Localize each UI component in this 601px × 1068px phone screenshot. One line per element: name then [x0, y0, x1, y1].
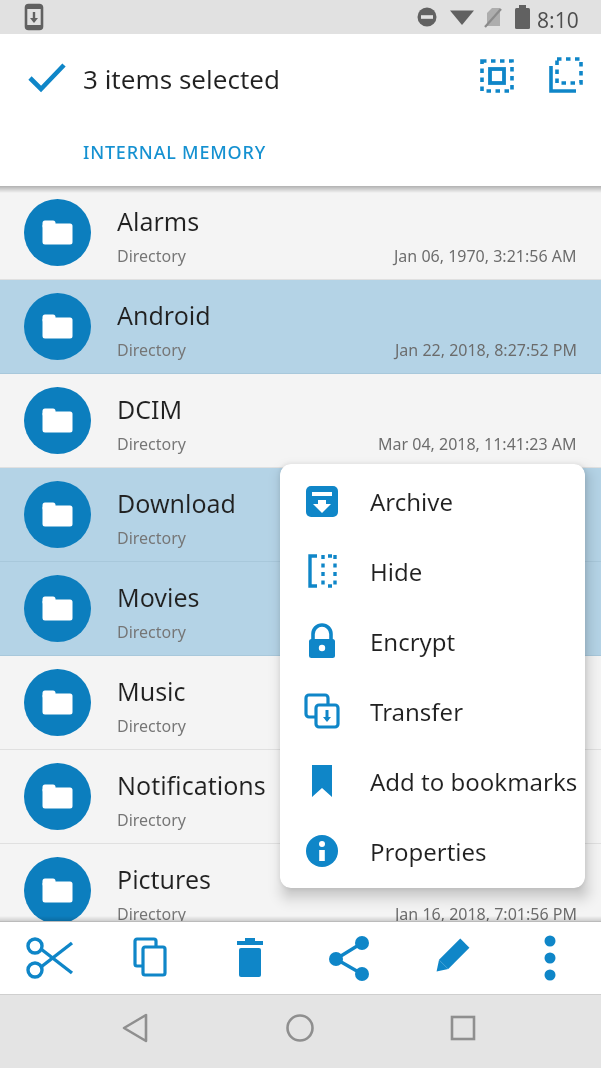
staticText: Directory [117, 809, 187, 831]
button[interactable]: Music [0, 656, 601, 750]
button[interactable] [433, 1001, 493, 1061]
staticText: Directory [117, 621, 187, 643]
staticText: 3 items selected [83, 61, 280, 96]
staticText: Add to bookmarks [370, 765, 578, 798]
staticText: INTERNAL MEMORY [83, 140, 266, 165]
button[interactable] [106, 1001, 166, 1061]
button[interactable] [114, 922, 186, 994]
staticText: Archive [370, 485, 454, 518]
button[interactable]: Android [0, 280, 601, 374]
button[interactable] [314, 922, 386, 994]
staticText: 8:10 [537, 6, 579, 35]
button[interactable]: Encrypt [280, 606, 585, 676]
button[interactable]: Notifications [0, 750, 601, 844]
staticText: Directory [117, 245, 187, 267]
staticText: Properties [370, 835, 487, 868]
button[interactable]: Alarms [0, 186, 601, 280]
button[interactable]: Properties [280, 816, 585, 886]
staticText: Music [117, 674, 186, 708]
button[interactable]: Transfer [280, 676, 585, 746]
staticText: Android [117, 298, 211, 332]
button[interactable]: Pictures [0, 844, 601, 922]
staticText: Jan 16, 2018, 7:01:56 PM [395, 903, 577, 922]
staticText: Transfer [370, 695, 464, 728]
button[interactable] [474, 53, 520, 99]
button[interactable]: Download [0, 468, 601, 562]
button[interactable]: Movies [0, 562, 601, 656]
staticText: Jan 06, 1970, 3:21:56 AM [394, 621, 577, 643]
staticText: Download [117, 486, 236, 520]
button[interactable] [214, 922, 286, 994]
staticText: Movies [117, 580, 200, 614]
button[interactable]: DCIM [0, 374, 601, 468]
button[interactable]: Add to bookmarks [280, 746, 585, 816]
staticText: Directory [117, 339, 187, 361]
staticText: Hide [370, 555, 423, 588]
staticText: Notifications [117, 768, 266, 802]
staticText: Directory [117, 903, 187, 922]
staticText: Jan 06, 1970, 3:21:56 AM [394, 715, 577, 737]
staticText: Directory [117, 715, 187, 737]
button[interactable] [414, 922, 486, 994]
button[interactable]: INTERNAL MEMORY [0, 135, 348, 169]
staticText: Alarms [117, 204, 200, 238]
button[interactable] [514, 922, 586, 994]
staticText: Jan 06, 1970, 3:21:56 AM [394, 245, 577, 267]
staticText: Directory [117, 527, 187, 549]
staticText: Mar 04, 2018, 11:41:23 AM [378, 433, 577, 455]
staticText: Encrypt [370, 625, 456, 658]
button[interactable] [543, 53, 589, 99]
button[interactable]: Archive [280, 466, 585, 536]
staticText: Jan 22, 2018, 8:27:52 PM [395, 339, 577, 361]
button[interactable] [14, 922, 86, 994]
button[interactable] [20, 49, 76, 105]
staticText: Pictures [117, 862, 211, 896]
button[interactable] [270, 1001, 330, 1061]
button[interactable]: Hide [280, 536, 585, 606]
staticText: DCIM [117, 392, 183, 426]
staticText: Directory [117, 433, 187, 455]
